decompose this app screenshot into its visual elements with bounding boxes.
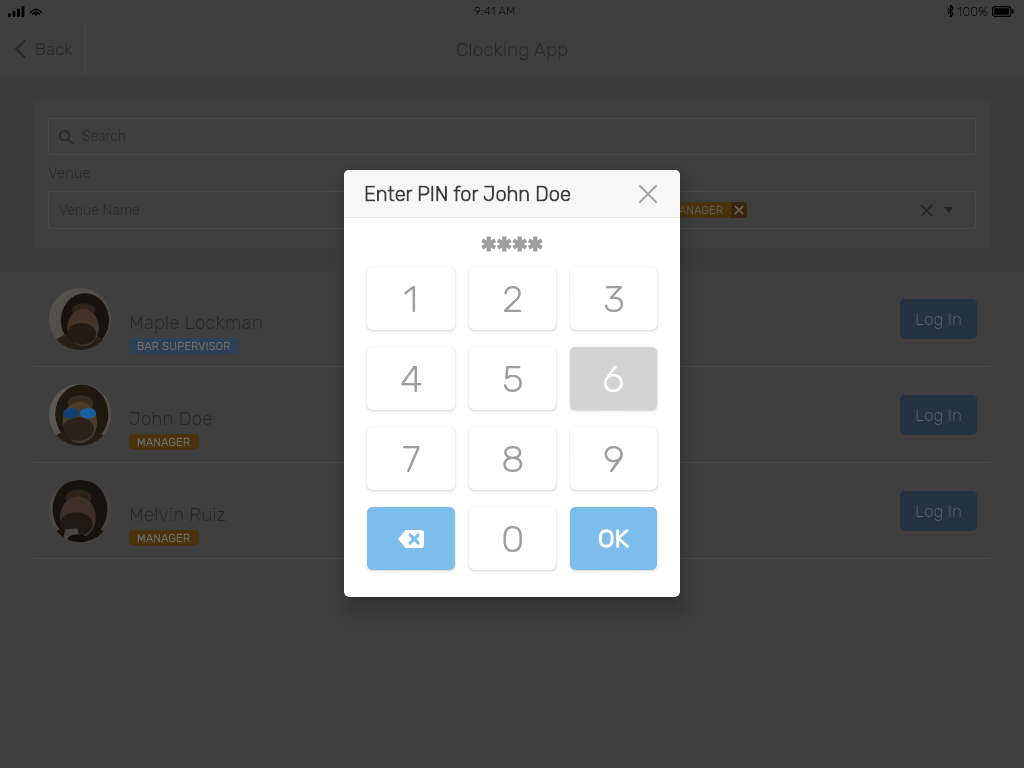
staticText: 9	[603, 436, 625, 481]
staticText: Back	[35, 39, 73, 59]
staticText: MANAGER	[137, 436, 191, 449]
button[interactable]: Clear	[916, 200, 936, 220]
staticText: John Doe	[129, 407, 213, 430]
button[interactable]: 5	[469, 347, 556, 410]
staticText: Maple Lockman	[129, 311, 263, 334]
staticText: Enter PIN for John Doe	[364, 182, 571, 206]
button[interactable]: Back	[0, 22, 87, 76]
staticText: Clocking App	[456, 38, 568, 61]
staticText: OK	[598, 524, 629, 554]
staticText: Search	[82, 128, 127, 145]
button[interactable]: 9	[570, 427, 657, 490]
button[interactable]: 1	[367, 267, 455, 330]
button[interactable]: OK	[570, 507, 657, 570]
staticText: 100%	[957, 4, 988, 19]
button[interactable]: Maple Lockman	[0, 271, 1024, 367]
staticText: Log In	[915, 501, 963, 521]
staticText: MANAGER	[670, 204, 724, 217]
staticText: 9:41 AM	[474, 4, 516, 18]
staticText: 5	[502, 356, 524, 401]
button[interactable]: 2	[469, 267, 556, 330]
staticText: 6	[602, 356, 625, 401]
staticText: 1	[403, 276, 419, 321]
button[interactable]: Log In	[900, 491, 977, 531]
staticText: Log In	[915, 405, 963, 425]
button[interactable]: 0	[469, 507, 556, 570]
staticText: 0	[501, 516, 525, 561]
button[interactable]: 3	[570, 267, 657, 330]
button[interactable]: Backspace	[367, 507, 455, 570]
button[interactable]: John Doe	[0, 367, 1024, 463]
button[interactable]: Close	[637, 183, 659, 205]
staticText: 4	[400, 356, 423, 401]
button[interactable]: MANAGER	[663, 202, 747, 218]
staticText: 7	[402, 436, 421, 481]
staticText: 3	[603, 276, 625, 321]
button[interactable]: Venue Name	[48, 191, 976, 229]
button[interactable]: 7	[367, 427, 455, 490]
staticText: 2	[502, 276, 524, 321]
button[interactable]: Melvin Ruiz	[0, 463, 1024, 559]
button[interactable]: 8	[469, 427, 556, 490]
button[interactable]: Log In	[900, 395, 977, 435]
button[interactable]: Log In	[900, 299, 977, 339]
staticText: Melvin Ruiz	[129, 503, 226, 526]
staticText: 8	[501, 436, 525, 481]
staticText: BAR SUPERVISOR	[137, 340, 231, 353]
button[interactable]: 4	[367, 347, 455, 410]
staticText: Venue Name	[59, 202, 140, 219]
button[interactable]: 6	[570, 347, 657, 410]
staticText: MANAGER	[137, 532, 191, 545]
staticText: Venue	[48, 164, 91, 182]
staticText: Log In	[915, 309, 963, 329]
